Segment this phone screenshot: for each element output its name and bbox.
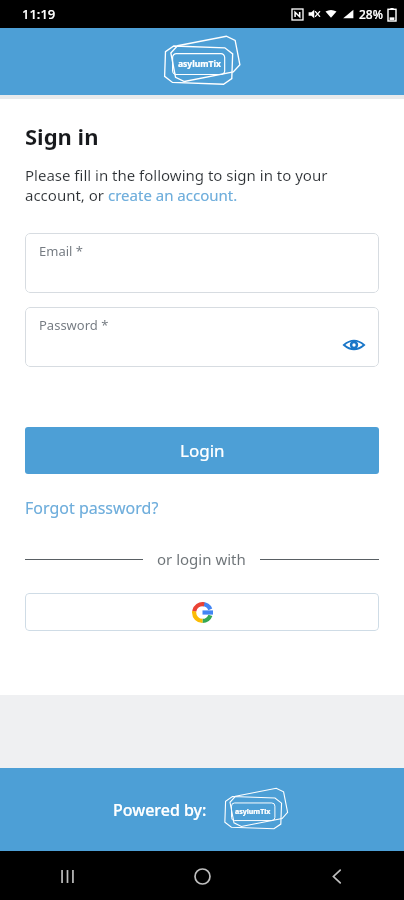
staticText: account, or xyxy=(25,185,108,205)
staticText: 11:19 xyxy=(22,5,56,23)
staticText: Powered by: xyxy=(113,799,207,821)
staticText: Password * xyxy=(39,316,109,334)
button[interactable]: Back xyxy=(315,854,359,898)
button[interactable]: Sign in with Google xyxy=(25,593,379,631)
staticText: asylumTix xyxy=(178,58,221,70)
staticText: 28% xyxy=(359,6,383,22)
button[interactable]: Forgot password? xyxy=(25,497,159,519)
staticText: or login with xyxy=(157,549,246,569)
button[interactable]: Password * xyxy=(25,307,379,367)
staticText: asylumTix xyxy=(235,807,271,817)
button[interactable]: Email * xyxy=(25,233,379,293)
button[interactable]: create an account. xyxy=(108,185,238,205)
staticText: Please fill in the following to sign in … xyxy=(25,165,328,185)
button[interactable]: Login xyxy=(25,427,379,474)
staticText: Sign in xyxy=(25,121,99,151)
staticText: Login xyxy=(180,439,225,462)
button[interactable]: Show password xyxy=(341,332,367,358)
button[interactable]: Home xyxy=(180,854,224,898)
staticText: Email * xyxy=(39,242,83,260)
button[interactable]: Recent apps xyxy=(45,854,89,898)
